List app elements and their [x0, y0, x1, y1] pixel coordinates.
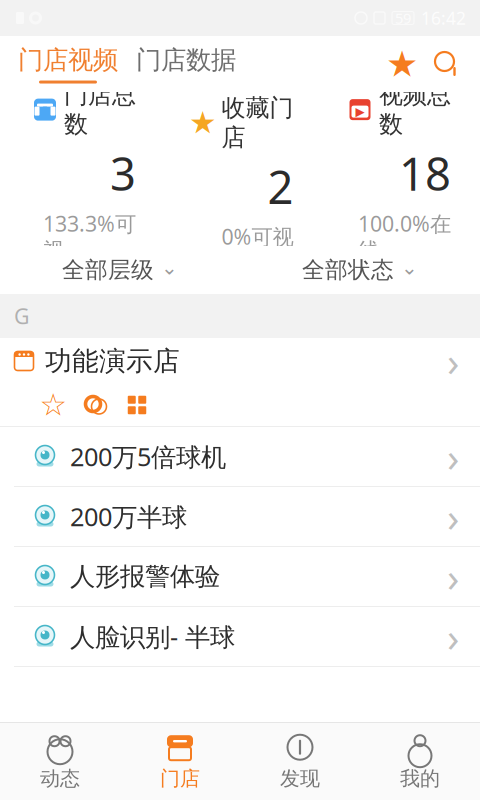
staticText: ★: [189, 105, 216, 140]
staticText: ›: [447, 610, 459, 663]
button[interactable]: 门店: [120, 723, 240, 800]
staticText: 门店视频: [18, 44, 118, 75]
button[interactable]: 发现: [240, 723, 360, 800]
button[interactable]: 全部层级: [52, 246, 188, 294]
staticText: 16:42: [421, 6, 466, 29]
staticText: 3: [110, 143, 136, 203]
staticText: 视频总数: [379, 80, 451, 139]
staticText: ⌄: [401, 256, 418, 279]
staticText: 全部层级: [62, 256, 154, 284]
staticText: 人脸识别- 半球: [70, 620, 235, 653]
staticText: 门店: [160, 766, 200, 791]
staticText: 动态: [40, 766, 80, 791]
staticText: 功能演示店: [45, 345, 180, 377]
staticText: 人形报警体验: [70, 561, 220, 592]
staticText: 100.0%在线: [358, 209, 451, 264]
staticText: 133.3%可视: [43, 209, 136, 264]
staticText: 收藏门店: [221, 93, 293, 152]
staticText: ▶: [355, 105, 364, 118]
button[interactable]: 动态: [0, 723, 120, 800]
button[interactable]: ★: [174, 102, 305, 234]
button[interactable]: 200万半球: [0, 487, 480, 547]
button[interactable]: 200万5倍球机: [0, 427, 480, 487]
staticText: 门店数据: [136, 44, 236, 75]
button[interactable]: 收藏: [380, 36, 424, 92]
staticText: 我的: [400, 766, 440, 791]
button[interactable]: 我的: [360, 723, 480, 800]
staticText: ›: [447, 334, 459, 387]
staticText: 59: [395, 8, 411, 28]
staticText: 发现: [280, 766, 320, 791]
staticText: G: [14, 302, 30, 330]
button[interactable]: 人脸识别- 半球: [0, 607, 480, 667]
staticText: 2: [267, 156, 293, 216]
staticText: 门店总数: [64, 80, 136, 139]
staticText: ›: [447, 430, 459, 483]
button[interactable]: 门店总数: [17, 102, 148, 234]
staticText: ›: [447, 550, 459, 603]
staticText: ★: [386, 44, 418, 84]
staticText: 200万5倍球机: [70, 440, 226, 473]
button[interactable]: 全部状态: [292, 246, 428, 294]
staticText: ☆: [39, 388, 66, 422]
staticText: 0%可视: [221, 222, 293, 251]
button[interactable]: 门店数据: [126, 36, 246, 92]
staticText: 18: [399, 143, 451, 203]
button[interactable]: 门店视频: [0, 36, 126, 92]
staticText: 200万半球: [70, 500, 187, 533]
button[interactable]: 人形报警体验: [0, 547, 480, 607]
button[interactable]: ▶: [332, 102, 463, 234]
button[interactable]: 功能演示店: [0, 338, 480, 427]
staticText: 全部状态: [302, 256, 394, 284]
button[interactable]: 搜索: [424, 36, 470, 92]
staticText: ⌄: [161, 256, 178, 279]
staticText: ›: [447, 490, 459, 543]
